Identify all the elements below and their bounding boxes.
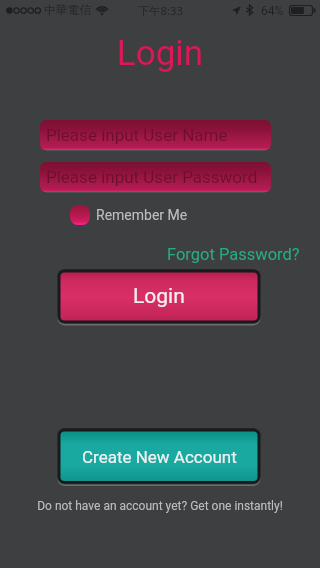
staticText: Create New Account (82, 447, 237, 467)
staticText: Forgot Password? (167, 245, 300, 264)
staticText: Remember Me (96, 207, 188, 223)
button[interactable]: Create New Account (57, 428, 261, 488)
staticText: Login (0, 33, 320, 74)
staticText: Do not have an account yet? Get one inst… (0, 499, 320, 513)
button[interactable]: Please input User Password (40, 162, 271, 194)
staticText: 中華電信 (44, 3, 92, 18)
button[interactable]: Please input User Name (40, 120, 271, 152)
button[interactable]: Remember Me (70, 204, 188, 226)
staticText: Login (133, 284, 185, 309)
staticText: 下午8:33 (138, 3, 184, 18)
staticText: 64% (261, 4, 284, 18)
button[interactable]: Login (57, 269, 261, 327)
staticText: Please input User Name (46, 125, 228, 145)
staticText: Please input User Password (46, 167, 258, 187)
button[interactable]: Forgot Password? (167, 245, 300, 264)
